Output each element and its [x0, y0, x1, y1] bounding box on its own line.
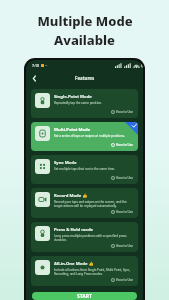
button[interactable]: Press & Hold mode [31, 222, 138, 252]
button[interactable]: START [32, 292, 137, 300]
staticText: Sync Mode [54, 160, 77, 166]
staticText: ··· [45, 64, 48, 68]
button[interactable]: How to Use [111, 210, 134, 214]
button[interactable]: How to Use [111, 176, 134, 180]
staticText: How to Use [116, 244, 134, 248]
staticText: How to Use [116, 176, 134, 180]
button[interactable]: Sync Mode [31, 155, 138, 184]
button[interactable]: How to Use [111, 110, 134, 114]
staticText: Multi-Point Mode [54, 127, 91, 133]
staticText: Available [54, 31, 115, 49]
staticText: Record your taps and swipes on the scree… [54, 200, 134, 208]
staticText: All-in-One Mode 👍 [54, 261, 94, 267]
button[interactable]: How to Use [111, 143, 134, 147]
button[interactable]: Single-Point Mode [31, 89, 138, 118]
staticText: Long press multiple positions with a spe… [54, 234, 134, 242]
staticText: How to Use [116, 110, 134, 114]
staticText: Features [75, 75, 95, 81]
staticText: How to Use [116, 143, 134, 147]
button[interactable]: How to Use [111, 278, 134, 282]
staticText: Record Mode 👍 [54, 193, 88, 199]
button[interactable]: All-in-One Mode 👍 [31, 256, 138, 286]
staticText: How to Use [116, 278, 134, 282]
staticText: Press & Hold mode [54, 227, 94, 233]
staticText: Set multiple taps that run in the same t… [54, 167, 115, 171]
staticText: Multiple Mode [37, 12, 133, 30]
button[interactable]: How to Use [111, 244, 134, 248]
staticText: 7:10 [32, 63, 39, 68]
staticText: Single-Point Mode [54, 94, 92, 100]
staticText: Set a series of taps or swipes at multip… [54, 134, 125, 138]
button[interactable]: Record Mode 👍 [31, 188, 138, 218]
button[interactable]: Multi-Point Mode [31, 122, 138, 151]
staticText: How to Use [116, 210, 134, 214]
button[interactable]: Back [30, 74, 39, 83]
staticText: Repeatedly tap the same position. [54, 101, 102, 105]
staticText: Include all actions from Single Point, M… [54, 268, 134, 276]
staticText: START [77, 293, 92, 300]
